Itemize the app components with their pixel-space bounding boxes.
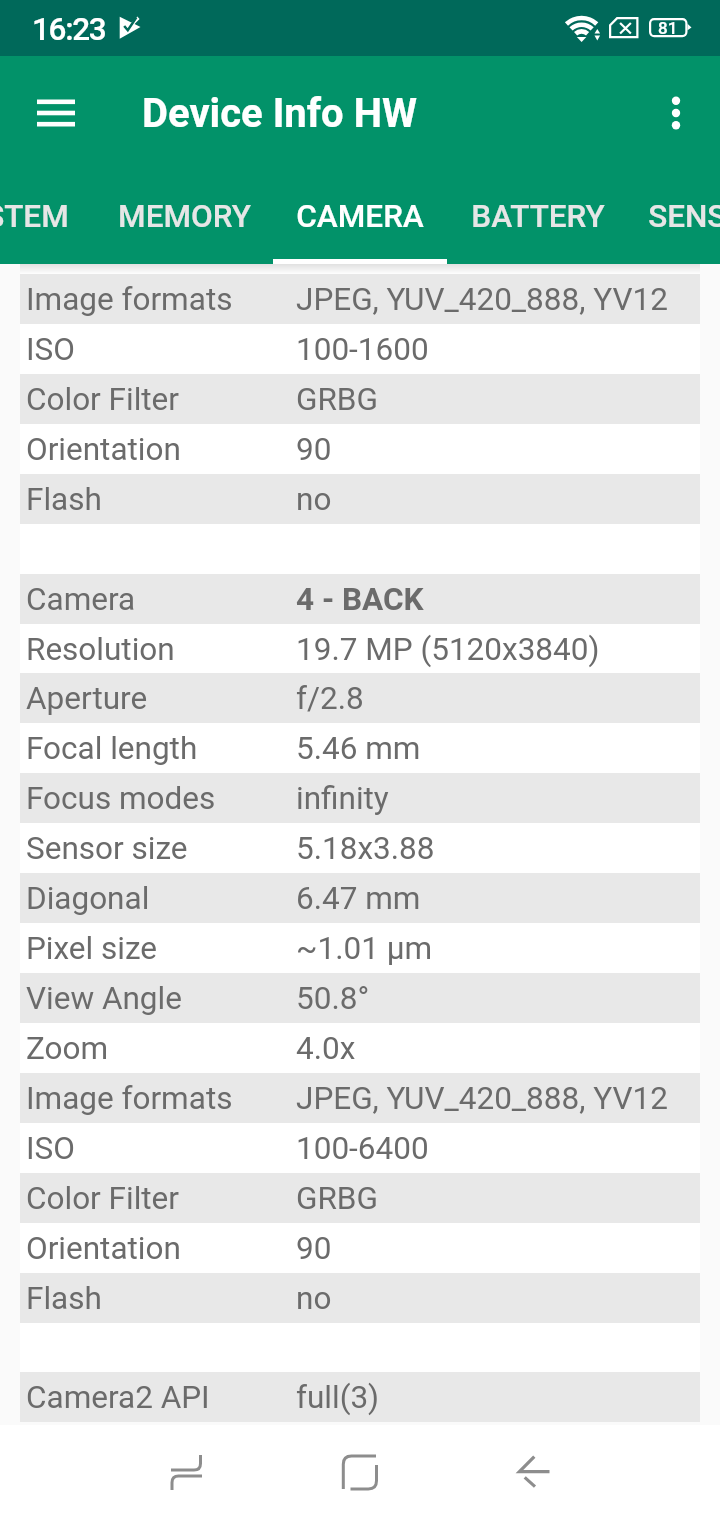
staticText: Focus modes [26, 780, 216, 817]
button[interactable]: Home [324, 1425, 396, 1520]
staticText: Image formats [26, 281, 233, 318]
button[interactable]: More options [644, 81, 708, 145]
staticText: Pixel size [26, 930, 158, 967]
staticText: JPEG, YUV_420_888, YV12 [296, 281, 668, 318]
staticText: Zoom [26, 1030, 109, 1067]
staticText: ~1.01 µm [296, 930, 433, 967]
button[interactable]: Camera [20, 574, 700, 624]
button[interactable]: Orientation [20, 1223, 700, 1273]
staticText: 100-1600 [296, 331, 429, 368]
button[interactable]: Focus modes [20, 773, 700, 823]
button[interactable]: ISO [20, 1123, 700, 1173]
staticText: BATTERY [471, 198, 605, 235]
button[interactable]: Color Filter [20, 1173, 700, 1223]
button[interactable]: Color Filter [20, 374, 700, 424]
staticText: 6.47 mm [296, 880, 421, 917]
staticText: JPEG, YUV_420_888, YV12 [296, 1080, 668, 1117]
staticText: 90 [296, 431, 332, 468]
staticText: 5.46 mm [296, 730, 421, 767]
staticText: 90 [296, 1230, 332, 1267]
staticText: f/2.8 [296, 680, 364, 717]
button[interactable]: Zoom [20, 1023, 700, 1073]
staticText: SYSTEM [0, 198, 69, 235]
button[interactable]: Camera2 API [20, 1372, 700, 1422]
button[interactable]: Aperture [20, 673, 700, 723]
staticText: 5.18x3.88 [296, 830, 435, 867]
staticText: Flash [26, 1280, 102, 1317]
staticText: 4 - BACK [296, 581, 424, 618]
staticText: MEMORY [118, 198, 251, 235]
button[interactable]: View Angle [20, 973, 700, 1023]
button[interactable]: Resolution [20, 624, 700, 674]
staticText: 4.0x [296, 1030, 356, 1067]
staticText: Orientation [26, 1230, 181, 1267]
staticText: Device Info HW [142, 90, 417, 137]
button[interactable]: Image formats [20, 274, 700, 324]
staticText: Sensor size [26, 830, 188, 867]
button[interactable]: Recents [145, 1425, 217, 1520]
staticText: Resolution [26, 631, 175, 668]
staticText: full(3) [296, 1379, 380, 1416]
button[interactable]: Flash [20, 1273, 700, 1323]
button[interactable]: Open navigation drawer [21, 78, 91, 148]
button[interactable]: Diagonal [20, 873, 700, 923]
button[interactable] [20, 1323, 700, 1373]
staticText: no [296, 481, 332, 518]
staticText: GRBG [296, 381, 378, 418]
staticText: View Angle [26, 980, 182, 1017]
button[interactable]: Orientation [20, 424, 700, 474]
staticText: Color Filter [26, 1180, 179, 1217]
staticText: 19.7 MP (5120x3840) [296, 631, 600, 668]
staticText: Image formats [26, 1080, 233, 1117]
staticText: 50.8° [296, 980, 370, 1017]
button[interactable]: Focal length [20, 723, 700, 773]
button[interactable]: Image formats [20, 1073, 700, 1123]
button[interactable]: MEMORY [96, 169, 272, 264]
staticText: Flash [26, 481, 102, 518]
button[interactable]: BATTERY [450, 169, 626, 264]
staticText: Focal length [26, 730, 198, 767]
button[interactable]: Pixel size [20, 923, 700, 973]
staticText: GRBG [296, 1180, 378, 1217]
staticText: 100-6400 [296, 1130, 429, 1167]
staticText: SENSORS [648, 198, 720, 235]
button[interactable]: SYSTEM [0, 169, 96, 264]
staticText: 81 [658, 18, 678, 38]
staticText: Orientation [26, 431, 181, 468]
staticText: Camera2 API [26, 1379, 210, 1416]
button[interactable]: ISO [20, 324, 700, 374]
staticText: Color Filter [26, 381, 179, 418]
staticText: ISO [26, 331, 75, 368]
staticText: Diagonal [26, 880, 150, 917]
button[interactable]: Flash [20, 474, 700, 524]
button[interactable]: Back [497, 1425, 569, 1520]
staticText: CAMERA [296, 198, 424, 235]
button[interactable]: CAMERA [272, 169, 448, 264]
staticText: 16:23 [32, 11, 106, 48]
staticText: Camera [26, 581, 136, 618]
staticText: infinity [296, 780, 389, 817]
staticText: Aperture [26, 680, 148, 717]
button[interactable]: Sensor size [20, 823, 700, 873]
staticText: ISO [26, 1130, 75, 1167]
button[interactable]: SENSORS [629, 169, 720, 264]
staticText: no [296, 1280, 332, 1317]
